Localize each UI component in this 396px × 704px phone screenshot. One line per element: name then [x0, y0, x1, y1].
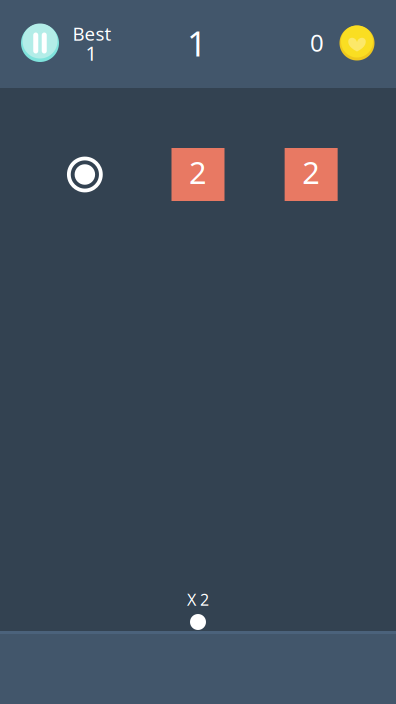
staticText: 2	[302, 152, 320, 192]
staticText: 0	[310, 27, 324, 58]
staticText: 2	[189, 152, 207, 192]
button[interactable]: Pause	[21, 24, 59, 62]
staticText: 1	[85, 40, 96, 66]
staticText: X 2	[187, 589, 209, 610]
button[interactable]: Coins	[339, 25, 374, 60]
staticText: Best	[72, 21, 111, 46]
staticText: 1	[187, 20, 207, 66]
